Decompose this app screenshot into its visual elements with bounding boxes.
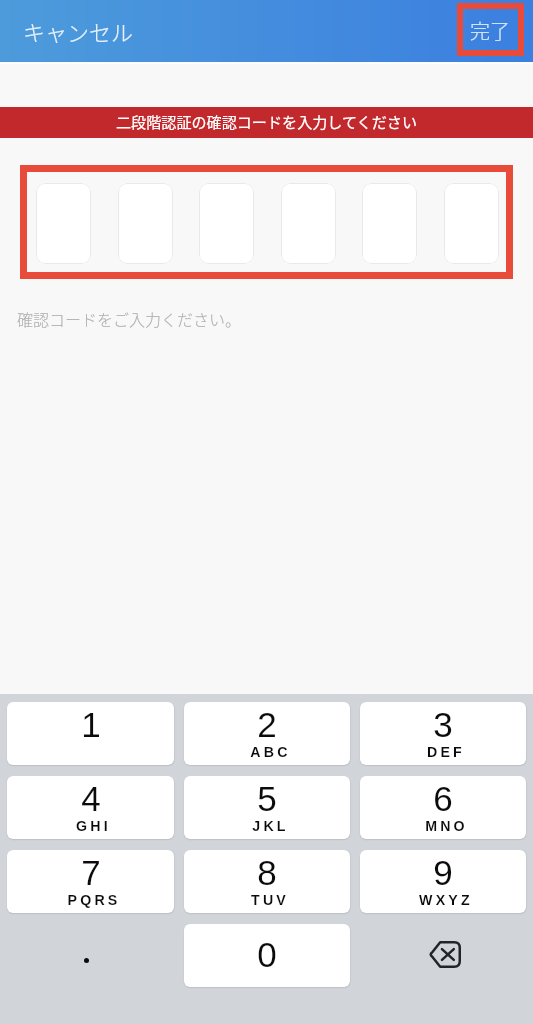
button[interactable]: Code digit 3 bbox=[199, 183, 254, 264]
staticText: DEF bbox=[427, 744, 465, 760]
staticText: 7 bbox=[81, 853, 101, 892]
button[interactable]: 1 bbox=[7, 702, 174, 765]
staticText: PQRS bbox=[67, 892, 121, 908]
button[interactable]: 9 bbox=[360, 850, 526, 913]
button[interactable]: 2 bbox=[184, 702, 350, 765]
staticText: 確認コードをご入力ください。 bbox=[17, 307, 242, 330]
button[interactable]: Code digit 5 bbox=[362, 183, 417, 264]
staticText: MNO bbox=[425, 818, 468, 834]
staticText: 9 bbox=[433, 853, 453, 892]
staticText: 2 bbox=[257, 705, 277, 744]
button[interactable]: 8 bbox=[184, 850, 350, 913]
staticText: WXYZ bbox=[419, 892, 473, 908]
button[interactable]: Code digit 1 bbox=[36, 183, 91, 264]
staticText: JKL bbox=[252, 818, 289, 834]
button[interactable]: 7 bbox=[7, 850, 174, 913]
staticText: 1 bbox=[81, 705, 101, 744]
button[interactable]: Period bbox=[7, 924, 174, 987]
button[interactable]: 0 bbox=[184, 924, 350, 987]
staticText: 3 bbox=[433, 705, 453, 744]
button[interactable]: 6 bbox=[360, 776, 526, 839]
button[interactable]: キャンセル bbox=[23, 15, 134, 47]
staticText: 0 bbox=[257, 935, 277, 974]
button[interactable]: Backspace bbox=[360, 924, 526, 987]
button[interactable]: 完了 bbox=[470, 16, 510, 45]
button[interactable]: Code digit 6 bbox=[444, 183, 499, 264]
button[interactable]: 5 bbox=[184, 776, 350, 839]
button[interactable]: 4 bbox=[7, 776, 174, 839]
staticText: 二段階認証の確認コードを入力してください bbox=[116, 110, 417, 132]
staticText: 完了 bbox=[470, 16, 510, 45]
staticText: 5 bbox=[257, 779, 277, 818]
staticText: GHI bbox=[76, 818, 111, 834]
staticText: 8 bbox=[257, 853, 277, 892]
button[interactable]: Code digit 4 bbox=[281, 183, 336, 264]
staticText: キャンセル bbox=[23, 15, 134, 47]
button[interactable]: 3 bbox=[360, 702, 526, 765]
staticText: 4 bbox=[81, 779, 101, 818]
staticText: TUV bbox=[251, 892, 289, 908]
button[interactable]: Code digit 2 bbox=[118, 183, 173, 264]
staticText: ABC bbox=[250, 744, 291, 760]
staticText: 6 bbox=[433, 779, 453, 818]
